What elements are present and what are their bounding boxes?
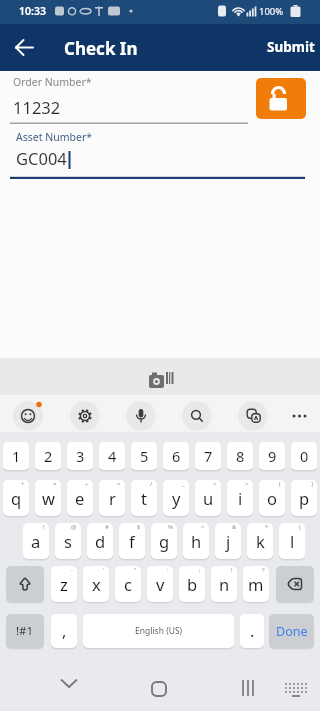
button[interactable]: w — [35, 480, 61, 516]
staticText: 7 — [204, 446, 213, 466]
button[interactable]: Submit — [262, 32, 320, 62]
staticText: z — [60, 573, 68, 595]
staticText: % — [168, 523, 173, 531]
button[interactable] — [10, 72, 248, 124]
staticText: Asset Number* — [16, 130, 92, 144]
staticText: ? — [262, 566, 265, 574]
staticText: . — [250, 620, 255, 642]
button[interactable]: k — [247, 523, 273, 559]
button[interactable] — [182, 401, 212, 431]
staticText: ] — [311, 480, 313, 488]
button[interactable]: 6 — [163, 442, 189, 470]
button[interactable]: z — [51, 566, 77, 602]
staticText: 100% — [259, 5, 284, 18]
staticText: English (US) — [135, 625, 183, 637]
staticText: - — [71, 566, 73, 574]
button[interactable] — [256, 78, 306, 119]
button[interactable] — [8, 32, 40, 64]
button[interactable]: 2 — [35, 442, 61, 470]
button[interactable] — [13, 401, 43, 431]
staticText: 5 — [140, 446, 149, 466]
button[interactable]: 5 — [131, 442, 157, 470]
button[interactable]: r — [99, 480, 125, 516]
staticText: m — [248, 573, 264, 595]
staticText: k — [256, 530, 265, 552]
button[interactable]: !#1 — [6, 614, 44, 648]
staticText: @ — [71, 523, 77, 531]
button[interactable] — [276, 566, 314, 602]
button[interactable]: m — [243, 566, 269, 602]
staticText: y — [172, 487, 181, 509]
button[interactable]: English (US) — [83, 614, 234, 648]
button[interactable]: p — [291, 480, 317, 516]
button[interactable]: a — [23, 523, 49, 559]
staticText: Check In — [64, 37, 138, 60]
button[interactable] — [70, 401, 100, 431]
button[interactable] — [140, 362, 180, 392]
staticText: q — [11, 487, 22, 509]
button[interactable]: g — [151, 523, 177, 559]
button[interactable]: . — [240, 614, 264, 648]
button[interactable]: i — [227, 480, 253, 516]
button[interactable]: c — [115, 566, 141, 602]
button[interactable]: x — [83, 566, 109, 602]
staticText: l — [290, 530, 295, 552]
staticText: : — [167, 566, 169, 574]
staticText: Order Number* — [13, 75, 92, 89]
staticText: _ — [182, 480, 185, 488]
button[interactable]: f — [119, 523, 145, 559]
button[interactable]: 0 — [291, 442, 317, 470]
button[interactable]: Done — [269, 614, 314, 648]
button[interactable]: , — [51, 614, 77, 648]
button[interactable] — [10, 128, 305, 180]
button[interactable] — [6, 566, 44, 602]
button[interactable]: 1 — [3, 442, 29, 470]
button[interactable]: v — [147, 566, 173, 602]
button[interactable] — [49, 668, 89, 696]
button[interactable]: 7 — [195, 442, 221, 470]
button[interactable]: h — [183, 523, 209, 559]
button[interactable] — [285, 401, 315, 431]
staticText: ( — [299, 523, 301, 531]
button[interactable] — [139, 668, 179, 696]
button[interactable]: u — [195, 480, 221, 516]
button[interactable]: o — [259, 480, 285, 516]
button[interactable] — [280, 672, 312, 700]
staticText: Submit — [267, 38, 315, 56]
button[interactable]: t — [131, 480, 157, 516]
button[interactable] — [228, 668, 268, 696]
button[interactable]: 3 — [67, 442, 93, 470]
staticText: > — [245, 480, 249, 488]
staticText: t — [141, 487, 147, 509]
button[interactable]: b — [179, 566, 205, 602]
button[interactable]: e — [67, 480, 93, 516]
button[interactable] — [126, 401, 156, 431]
staticText: 1 — [12, 446, 21, 466]
button[interactable]: s — [55, 523, 81, 559]
staticText: / — [150, 480, 153, 488]
button[interactable]: j — [215, 523, 241, 559]
staticText: ÷ — [85, 480, 89, 488]
staticText: w — [42, 487, 55, 509]
staticText: v — [156, 573, 165, 595]
button[interactable] — [238, 401, 268, 431]
button[interactable]: d — [87, 523, 113, 559]
button[interactable]: 8 — [227, 442, 253, 470]
staticText: = — [117, 480, 121, 488]
button[interactable]: 4 — [99, 442, 125, 470]
staticText: u — [203, 487, 214, 509]
staticText: h — [191, 530, 202, 552]
staticText: r — [109, 487, 116, 509]
staticText: d — [95, 530, 106, 552]
button[interactable]: y — [163, 480, 189, 516]
staticText: i — [238, 487, 243, 509]
button[interactable]: 9 — [259, 442, 285, 470]
staticText: $ — [137, 523, 141, 531]
button[interactable]: l — [279, 523, 305, 559]
button[interactable]: q — [3, 480, 29, 516]
button[interactable]: n — [211, 566, 237, 602]
staticText: , — [62, 620, 67, 642]
staticText: " — [134, 566, 137, 574]
staticText: 3 — [76, 446, 85, 466]
staticText: e — [75, 487, 85, 509]
